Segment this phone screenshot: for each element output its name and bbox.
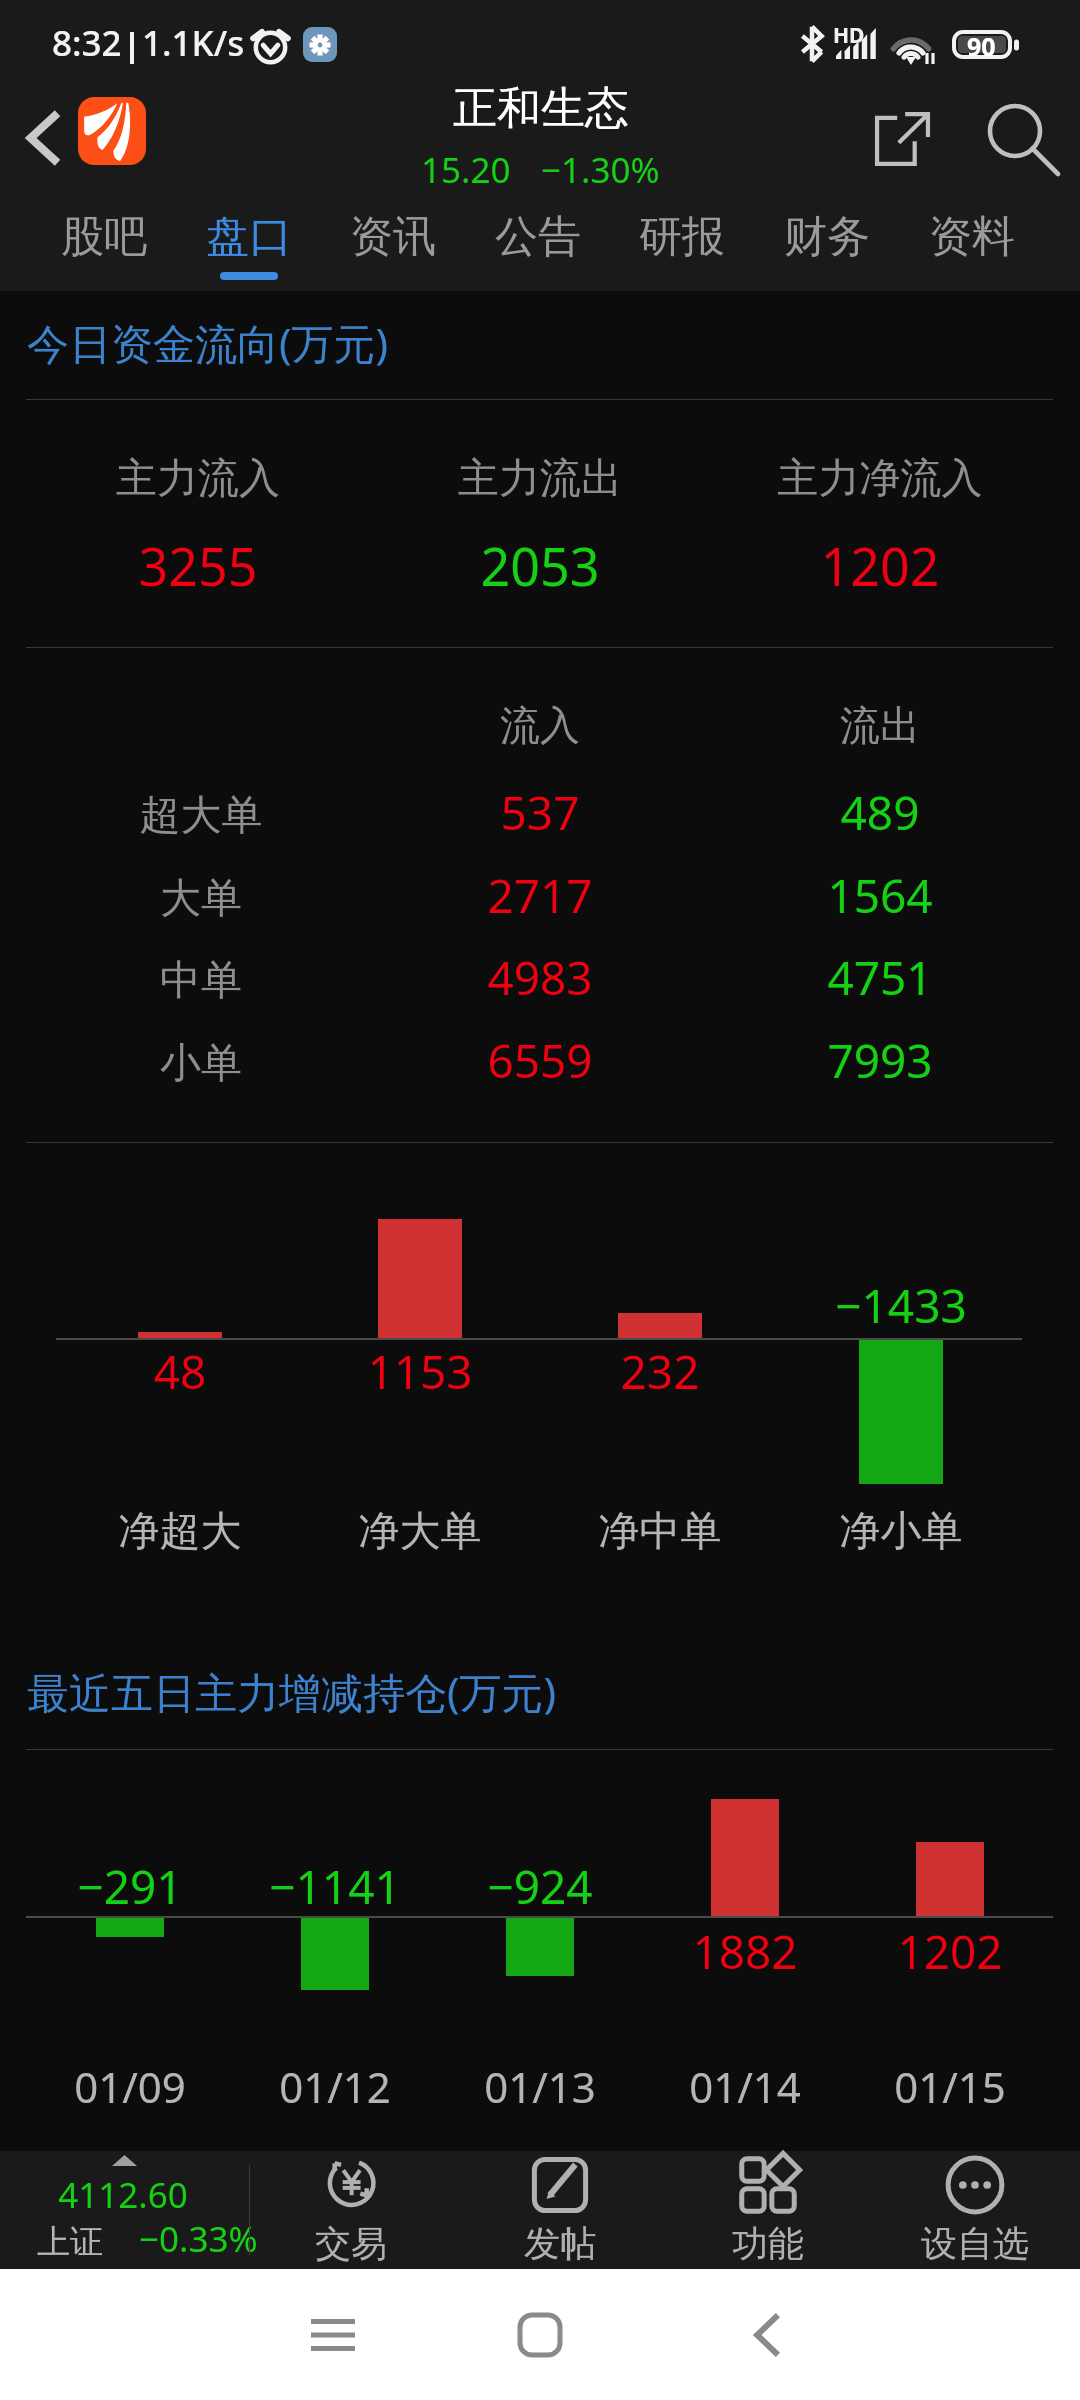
staticText: 公告 bbox=[495, 210, 581, 264]
button[interactable]: 公告 bbox=[466, 192, 610, 291]
staticText: 上证 bbox=[37, 2221, 103, 2263]
staticText: 7993 bbox=[680, 1029, 1080, 1092]
staticText: 8:32 bbox=[52, 19, 122, 67]
staticText: HD bbox=[833, 21, 865, 50]
staticText: 中单 bbox=[1, 955, 401, 1007]
staticText: 资料 bbox=[929, 210, 1015, 264]
button[interactable]: 资料 bbox=[900, 192, 1044, 291]
button[interactable]: Back bbox=[702, 2269, 832, 2400]
staticText: 3255 bbox=[0, 530, 398, 601]
staticText: 15.20 bbox=[421, 146, 511, 189]
button[interactable]: 研报 bbox=[610, 192, 754, 291]
staticText: −924 bbox=[340, 1855, 740, 1918]
staticText: −1.30% bbox=[541, 146, 660, 189]
staticText: 01/15 bbox=[750, 2058, 1080, 2115]
staticText: 4983 bbox=[340, 946, 740, 1009]
button[interactable]: Share bbox=[862, 98, 942, 178]
staticText: 主力流入 bbox=[0, 453, 398, 505]
button[interactable]: Search bbox=[978, 96, 1060, 178]
button[interactable]: 交易 bbox=[251, 2151, 451, 2269]
staticText: 设自选 bbox=[875, 2221, 1075, 2266]
button[interactable]: East Money home bbox=[78, 97, 146, 165]
button[interactable]: 股吧 bbox=[32, 192, 176, 291]
staticText: 正和生态 bbox=[453, 81, 629, 136]
staticText: −291 bbox=[0, 1855, 330, 1918]
staticText: 今日资金流向(万元) bbox=[27, 314, 389, 371]
button[interactable]: 4112.60 bbox=[0, 2151, 249, 2269]
staticText: 6559 bbox=[340, 1029, 740, 1092]
staticText: 资讯 bbox=[350, 210, 436, 264]
staticText: 1202 bbox=[750, 1920, 1080, 1983]
button[interactable]: 财务 bbox=[755, 192, 899, 291]
staticText: 流入 bbox=[340, 700, 740, 750]
staticText: 交易 bbox=[251, 2221, 451, 2266]
staticText: 01/09 bbox=[0, 2058, 330, 2115]
staticText: 净超大 bbox=[0, 1506, 380, 1558]
staticText: 1153 bbox=[220, 1340, 620, 1403]
staticText: 主力流出 bbox=[340, 453, 740, 505]
staticText: 01/12 bbox=[135, 2058, 535, 2115]
staticText: −1433 bbox=[701, 1274, 1080, 1337]
button[interactable]: 盘口 bbox=[177, 192, 321, 291]
button[interactable]: 发帖 bbox=[460, 2151, 660, 2269]
staticText: 功能 bbox=[668, 2221, 868, 2266]
staticText: 股吧 bbox=[61, 210, 147, 264]
staticText: 最近五日主力增减持仓(万元) bbox=[27, 1663, 557, 1720]
staticText: 01/13 bbox=[340, 2058, 740, 2115]
button[interactable]: 功能 bbox=[668, 2151, 868, 2269]
staticText: 537 bbox=[340, 781, 740, 844]
button[interactable]: Recents bbox=[268, 2269, 398, 2400]
staticText: 4112.60 bbox=[0, 2171, 246, 2219]
staticText: 财务 bbox=[784, 210, 870, 264]
staticText: 发帖 bbox=[460, 2221, 660, 2266]
staticText: 流出 bbox=[680, 700, 1080, 750]
staticText: 净大单 bbox=[220, 1506, 620, 1558]
staticText: 净小单 bbox=[701, 1506, 1080, 1558]
staticText: 2053 bbox=[340, 530, 740, 601]
staticText: 2717 bbox=[340, 864, 740, 927]
staticText: 大单 bbox=[1, 873, 401, 925]
staticText: 净中单 bbox=[460, 1506, 860, 1558]
staticText: 小单 bbox=[1, 1038, 401, 1090]
staticText: −0.33% bbox=[139, 2215, 258, 2263]
staticText: 超大单 bbox=[1, 790, 401, 842]
staticText: 48 bbox=[0, 1340, 380, 1403]
staticText: 1564 bbox=[680, 864, 1080, 927]
staticText: 1202 bbox=[680, 530, 1080, 601]
staticText: 489 bbox=[680, 781, 1080, 844]
staticText: 90 bbox=[967, 29, 996, 58]
staticText: 主力净流入 bbox=[680, 453, 1080, 505]
staticText: 4751 bbox=[680, 946, 1080, 1009]
button[interactable]: Home bbox=[475, 2269, 605, 2400]
staticText: 1882 bbox=[545, 1920, 945, 1983]
button[interactable]: 资讯 bbox=[321, 192, 465, 291]
staticText: 1.1K/s bbox=[142, 19, 245, 67]
button[interactable]: Back bbox=[6, 84, 78, 192]
staticText: 01/14 bbox=[545, 2058, 945, 2115]
button[interactable]: 设自选 bbox=[875, 2151, 1075, 2269]
staticText: −1141 bbox=[135, 1855, 535, 1918]
staticText: 盘口 bbox=[206, 210, 292, 264]
staticText: 研报 bbox=[639, 210, 725, 264]
staticText: 232 bbox=[460, 1340, 860, 1403]
